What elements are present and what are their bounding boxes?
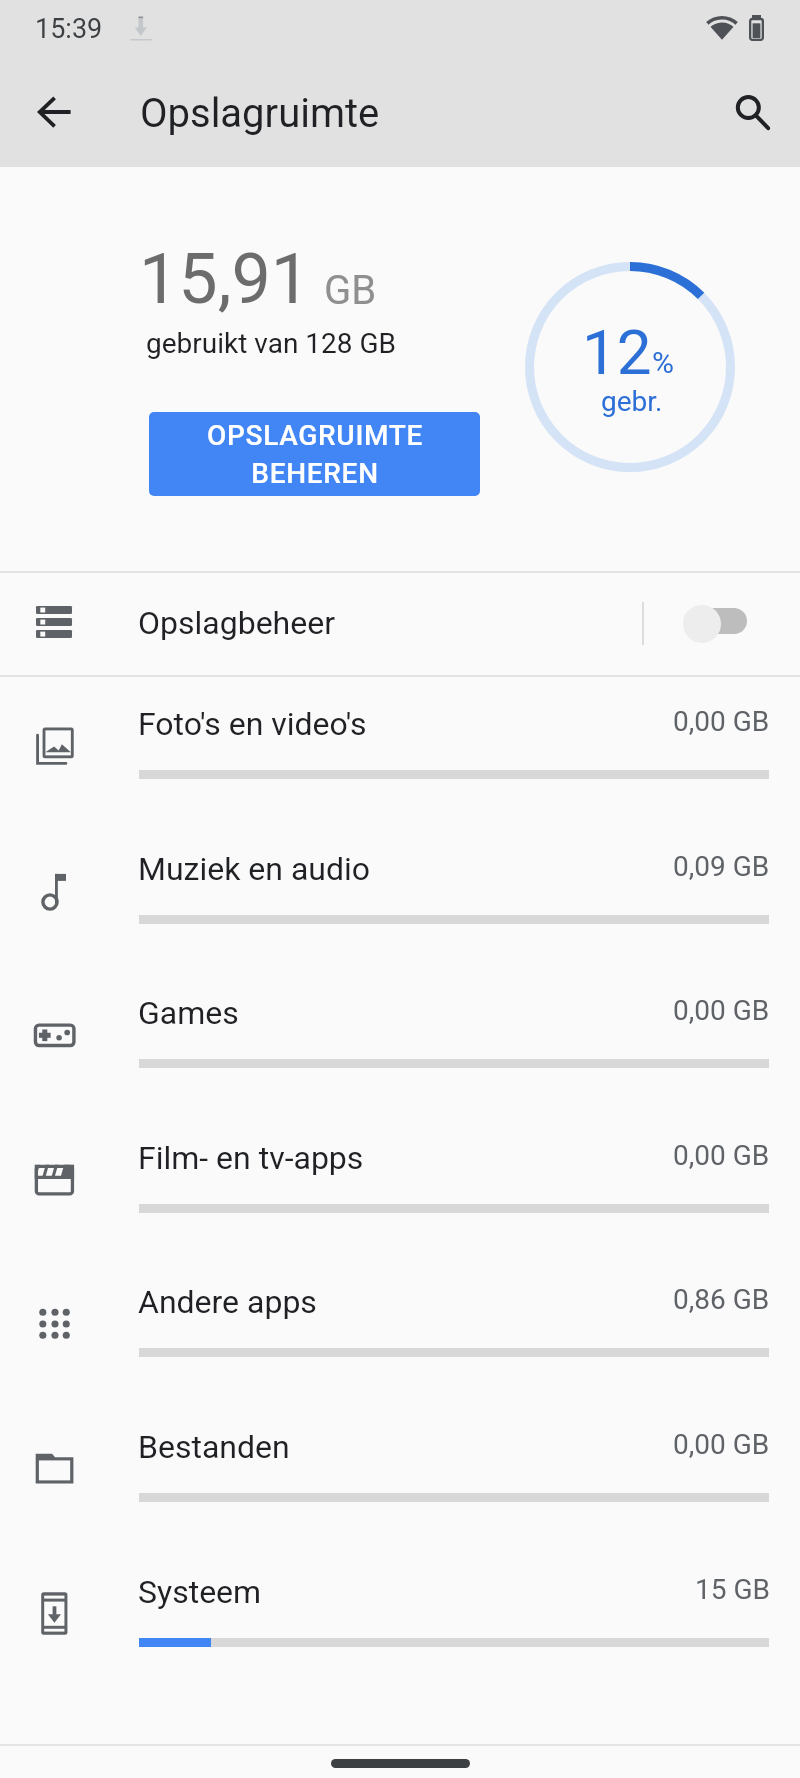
- button[interactable]: Muziek en audio: [0, 821, 800, 965]
- staticText: GB: [324, 267, 377, 314]
- staticText: Bestanden: [138, 1428, 290, 1466]
- button[interactable]: Systeem: [0, 1544, 800, 1688]
- staticText: Systeem: [138, 1573, 262, 1611]
- staticText: 15,91: [139, 238, 311, 320]
- button[interactable]: Andere apps: [0, 1254, 800, 1398]
- staticText: gebr.: [601, 385, 663, 418]
- staticText: 15:39: [35, 13, 103, 45]
- staticText: Film- en tv-apps: [138, 1139, 364, 1177]
- staticText: Foto's en video's: [138, 705, 367, 743]
- button[interactable]: Terug: [19, 77, 91, 149]
- staticText: 0,86 GB: [673, 1283, 770, 1316]
- button[interactable]: Opslagbeheer: [0, 572, 800, 675]
- button[interactable]: OPSLAGRUIMTE BEHEREN: [149, 412, 480, 496]
- button[interactable]: Bestanden: [0, 1399, 800, 1543]
- staticText: Muziek en audio: [138, 850, 371, 888]
- staticText: 15 GB: [695, 1573, 770, 1606]
- staticText: 0,00 GB: [673, 705, 770, 738]
- staticText: Opslagbeheer: [138, 604, 335, 642]
- staticText: 0,09 GB: [673, 850, 770, 883]
- staticText: gebruikt van 128 GB: [146, 327, 396, 360]
- staticText: %: [652, 345, 674, 380]
- staticText: 0,00 GB: [673, 994, 770, 1027]
- staticText: 0,00 GB: [673, 1428, 770, 1461]
- staticText: 12: [582, 316, 652, 389]
- button[interactable]: Foto's en video's: [0, 676, 800, 820]
- button[interactable]: Opslagbeheer aan/uit: [670, 582, 770, 666]
- staticText: Andere apps: [138, 1283, 317, 1321]
- staticText: Games: [138, 994, 239, 1032]
- button[interactable]: Zoeken: [716, 77, 788, 149]
- staticText: OPSLAGRUIMTE BEHEREN: [190, 419, 440, 490]
- staticText: Opslagruimte: [140, 90, 380, 137]
- staticText: 0,00 GB: [673, 1139, 770, 1172]
- button[interactable]: Film- en tv-apps: [0, 1110, 800, 1254]
- button[interactable]: Games: [0, 965, 800, 1109]
